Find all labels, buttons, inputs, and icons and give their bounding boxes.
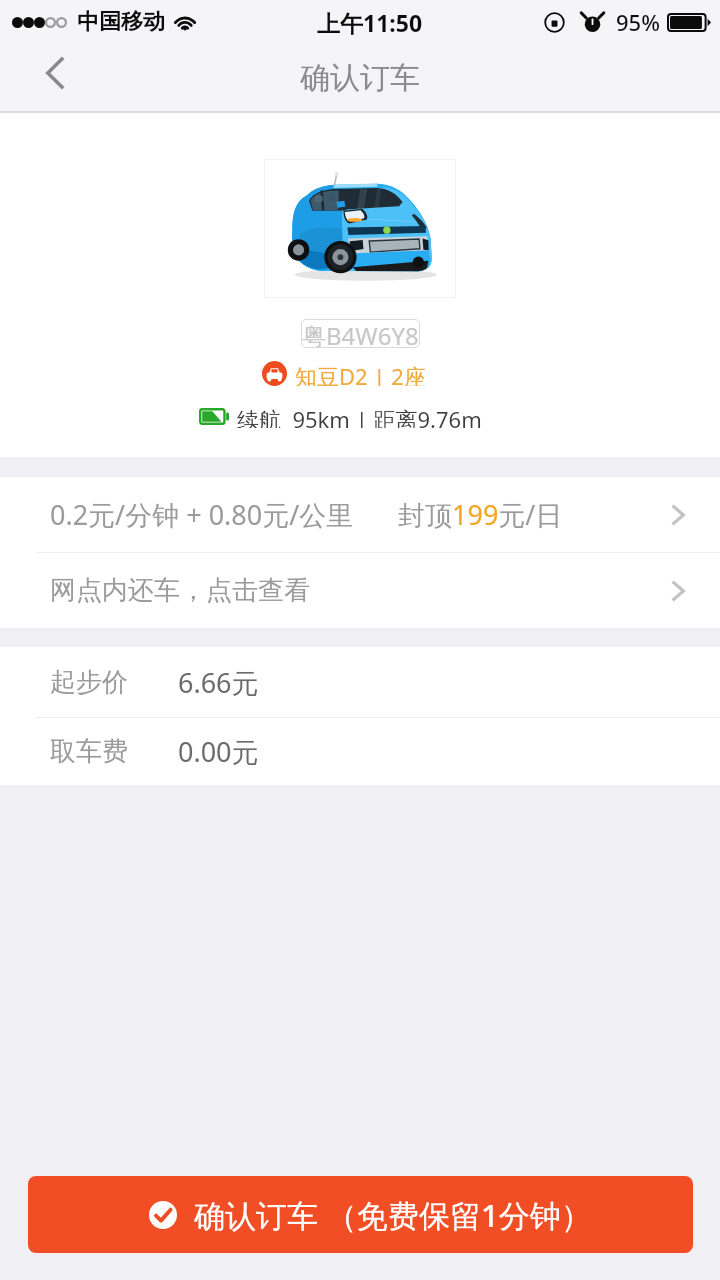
staticText: 确认订车 （免费保留1分钟） [194, 1194, 592, 1236]
staticText: 续航 95km | 距离9.76m [237, 404, 482, 428]
staticText: 95% [616, 7, 660, 37]
staticText: 6.66元 [178, 664, 259, 701]
staticText: 粤B4W6Y8 [302, 319, 419, 348]
staticText: 中国移动 [77, 8, 165, 36]
staticText: 起步价 [50, 666, 128, 699]
button[interactable]: Back [0, 44, 100, 111]
staticText: 知豆D2 | 2座 [295, 361, 426, 386]
staticText: 网点内还车，点击查看 [50, 574, 310, 607]
staticText: 确认订车 [300, 59, 420, 97]
staticText: 上午11:50 [317, 7, 423, 38]
staticText: 0.2元/分钟 + 0.80元/公里 [50, 496, 354, 533]
staticText: 封顶199元/日 [398, 496, 563, 533]
staticText: 取车费 [50, 735, 128, 768]
button[interactable]: 网点内还车，点击查看 [0, 553, 720, 628]
button[interactable]: 0.2元/分钟 + 0.80元/公里 [0, 477, 720, 552]
button[interactable]: 确认订车 （免费保留1分钟） [28, 1176, 693, 1253]
staticText: 0.00元 [178, 733, 259, 770]
